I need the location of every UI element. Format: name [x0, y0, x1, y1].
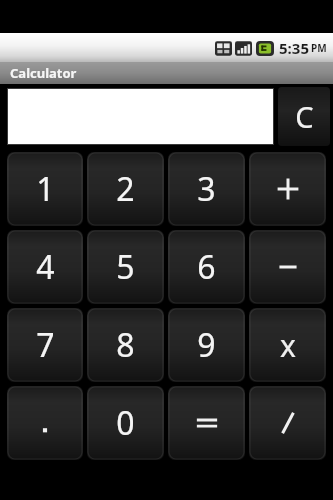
staticText: 5:35: [279, 38, 309, 58]
button[interactable]: 7: [7, 308, 83, 382]
staticText: 3: [197, 167, 216, 211]
button[interactable]: [7, 386, 83, 460]
button[interactable]: 8: [87, 308, 164, 382]
button[interactable]: 3: [168, 152, 245, 226]
staticText: C: [295, 97, 314, 136]
staticText: 8: [116, 323, 135, 367]
staticText: 1: [36, 167, 55, 211]
staticText: Calculator: [10, 64, 77, 82]
button[interactable]: 6: [168, 230, 245, 304]
button[interactable]: [249, 386, 326, 460]
button[interactable]: [249, 152, 326, 226]
button[interactable]: x: [249, 308, 326, 382]
button[interactable]: 4: [7, 230, 83, 304]
staticText: 5: [116, 245, 135, 289]
staticText: 6: [197, 245, 216, 289]
button[interactable]: 1: [7, 152, 83, 226]
button[interactable]: [249, 230, 326, 304]
staticText: 2: [116, 167, 135, 211]
button[interactable]: 0: [87, 386, 164, 460]
staticText: x: [280, 325, 296, 366]
staticText: 7: [36, 323, 55, 367]
staticText: PM: [311, 41, 327, 55]
button[interactable]: C: [278, 87, 330, 146]
button[interactable]: [168, 386, 245, 460]
button[interactable]: 9: [168, 308, 245, 382]
staticText: 0: [116, 401, 135, 445]
button[interactable]: 2: [87, 152, 164, 226]
staticText: 4: [36, 245, 55, 289]
staticText: 9: [197, 323, 216, 367]
button[interactable]: 5: [87, 230, 164, 304]
